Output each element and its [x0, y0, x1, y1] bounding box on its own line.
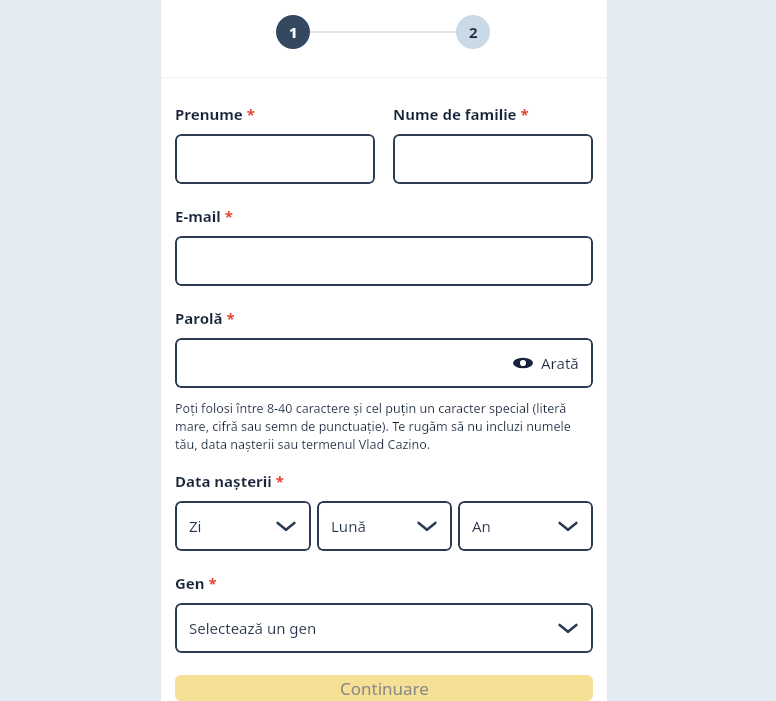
staticText: Prenume *: [175, 104, 255, 124]
button[interactable]: Selectează un gen: [175, 603, 593, 653]
button[interactable]: Continuare: [175, 675, 593, 701]
staticText: Lună: [331, 516, 366, 536]
staticText: Selectează un gen: [189, 618, 317, 638]
button[interactable]: Zi: [175, 501, 311, 551]
staticText: Zi: [189, 516, 202, 536]
staticText: Nume de familie *: [393, 104, 529, 124]
button[interactable]: An: [458, 501, 593, 551]
staticText: Gen *: [175, 573, 217, 593]
button[interactable]: 1: [276, 15, 310, 49]
button[interactable]: [175, 236, 593, 286]
staticText: 1: [289, 22, 298, 42]
staticText: Parolă *: [175, 308, 235, 328]
staticText: An: [472, 516, 491, 536]
button[interactable]: [393, 134, 593, 184]
staticText: Data nașterii *: [175, 471, 284, 491]
button[interactable]: Lună: [317, 501, 452, 551]
staticText: Arată: [541, 353, 579, 373]
button[interactable]: Arată parola: [175, 338, 593, 388]
staticText: Poți folosi între 8-40 caractere și cel …: [175, 400, 593, 453]
button[interactable]: [175, 134, 375, 184]
staticText: E-mail *: [175, 206, 233, 226]
staticText: 2: [469, 22, 478, 42]
staticText: Continuare: [340, 677, 429, 700]
button[interactable]: 2: [456, 15, 490, 49]
button[interactable]: Arată parola: [513, 353, 579, 373]
